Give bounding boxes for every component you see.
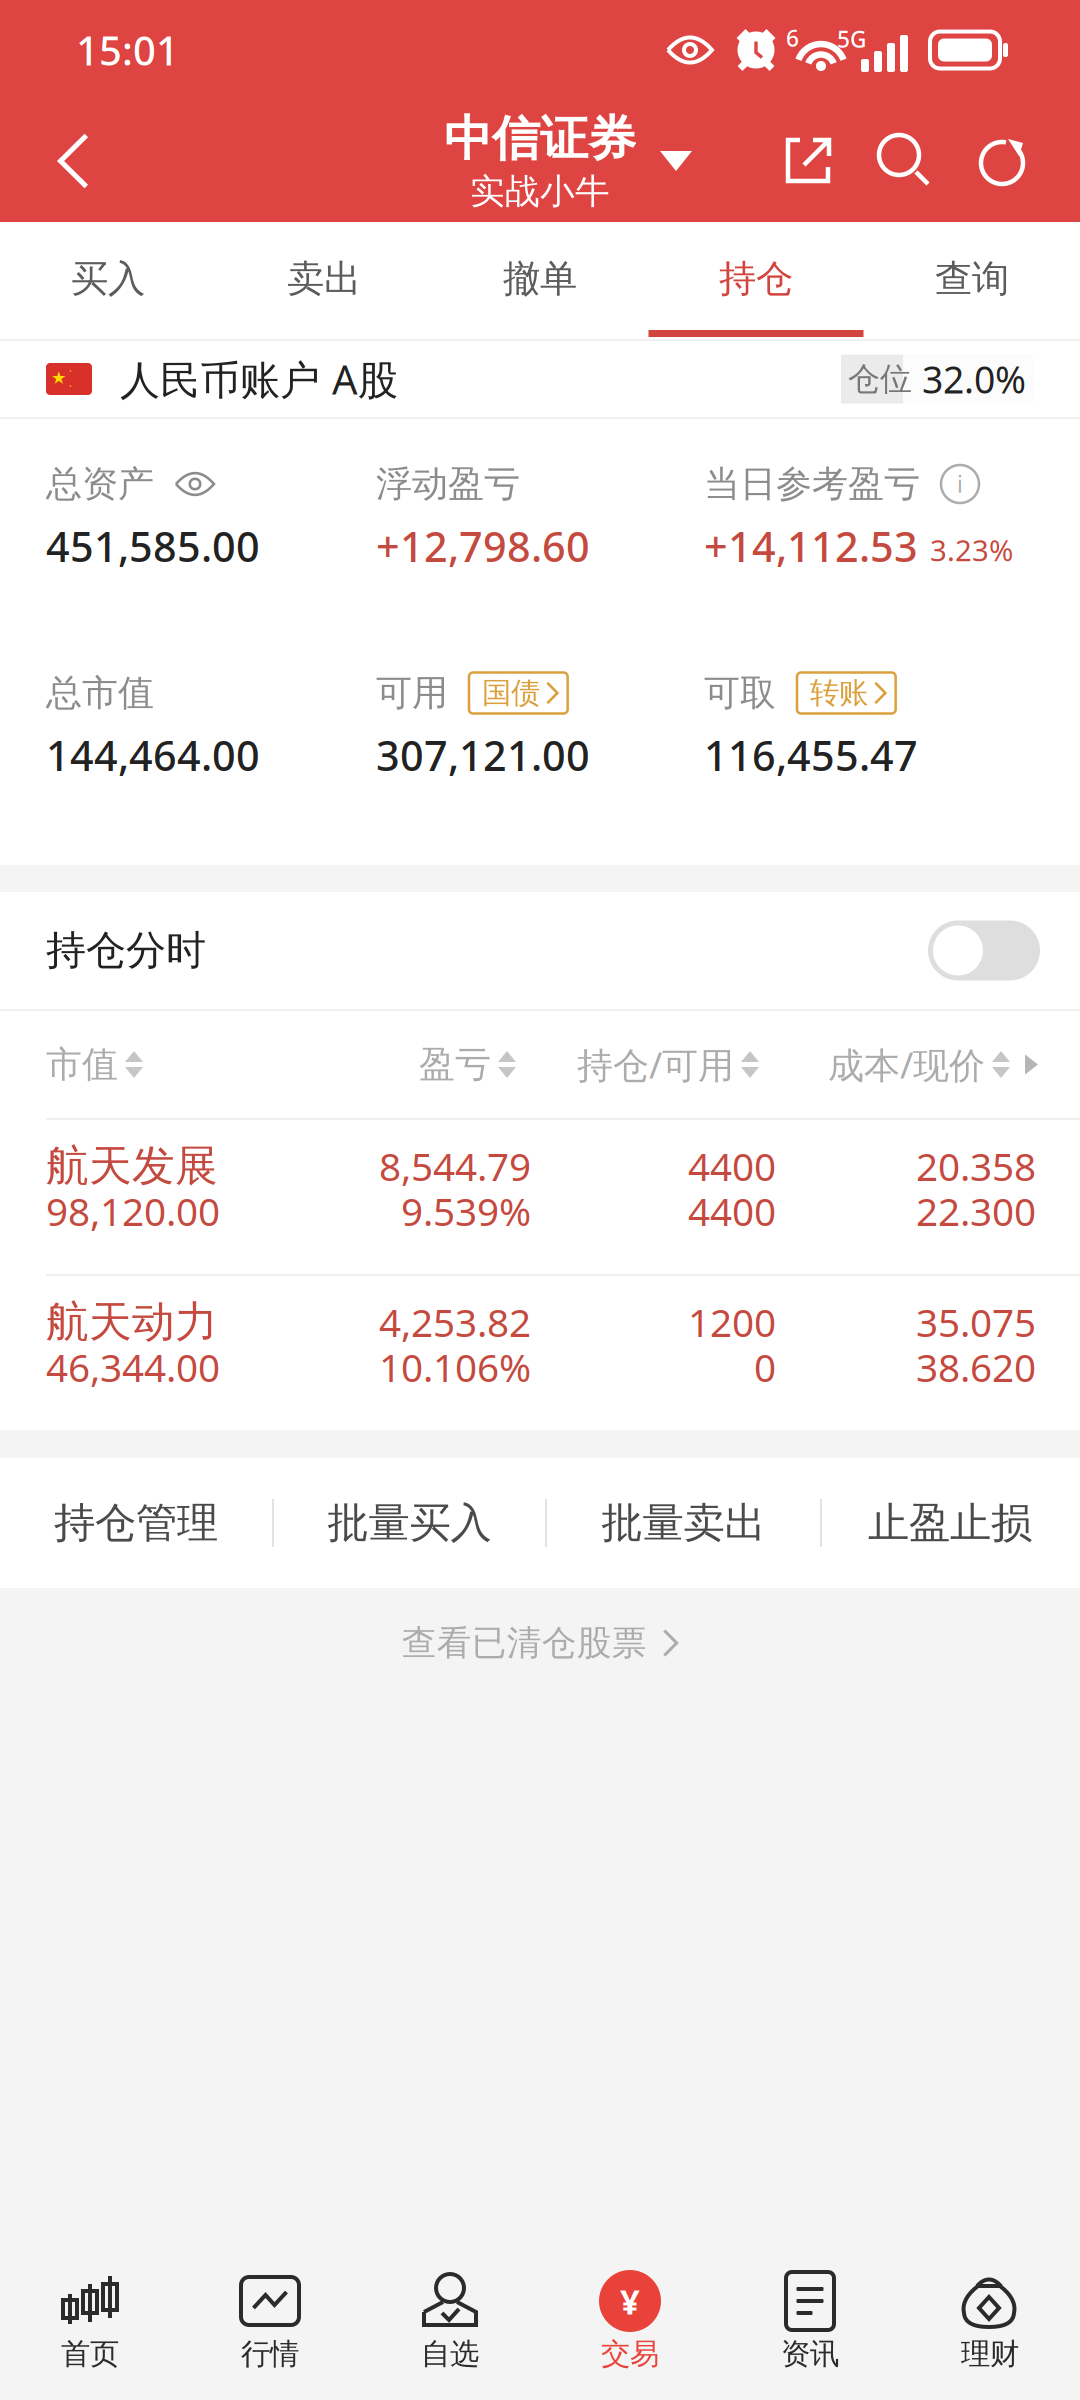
staticText: 5G — [837, 24, 866, 54]
staticText: 可用 — [376, 671, 448, 715]
button[interactable]: ★ — [0, 341, 1080, 417]
staticText: 116,455.47 — [704, 728, 918, 782]
staticText: 资讯 — [781, 2336, 839, 2372]
staticText: 盈亏 — [419, 1042, 491, 1087]
button[interactable]: 理财 — [900, 2250, 1080, 2400]
staticText: 卖出 — [287, 256, 361, 302]
button[interactable]: 查看已清仓股票 — [0, 1588, 1080, 1698]
staticText: 307,121.00 — [376, 728, 590, 782]
button[interactable]: 撤单 — [432, 222, 648, 339]
staticText: 批量卖出 — [601, 1498, 765, 1548]
staticText: 98,120.00 — [46, 1185, 220, 1237]
button[interactable]: 行情 — [180, 2250, 360, 2400]
button[interactable]: 航天动力 — [0, 1276, 1080, 1430]
staticText: +12,798.60 — [376, 519, 590, 573]
staticText: 中信证券 — [444, 109, 636, 168]
staticText: 9.539% — [401, 1185, 531, 1237]
button[interactable]: 首页 — [0, 2250, 180, 2400]
button[interactable]: Refresh — [976, 135, 1028, 187]
staticText: 20.358 — [916, 1140, 1036, 1192]
staticText: 32.0% — [922, 354, 1026, 404]
staticText: 可取 — [704, 671, 776, 715]
staticText: 持仓分时 — [46, 926, 206, 975]
button[interactable]: 持仓管理 — [0, 1458, 272, 1588]
staticText: 35.075 — [916, 1296, 1036, 1348]
staticText: 6 — [786, 23, 799, 53]
staticText: 4400 — [688, 1185, 776, 1237]
staticText: 0 — [754, 1341, 776, 1393]
staticText: 自选 — [421, 2336, 479, 2372]
staticText: 止盈止损 — [868, 1498, 1032, 1548]
staticText: 10.106% — [379, 1341, 531, 1393]
staticText: 4400 — [688, 1140, 776, 1192]
staticText: 451,585.00 — [46, 519, 260, 573]
staticText: 航天动力 — [46, 1296, 218, 1348]
staticText: ★ — [51, 368, 67, 387]
staticText: 交易 — [601, 2336, 659, 2372]
staticText: 38.620 — [916, 1341, 1036, 1393]
staticText: 当日参考盈亏 — [704, 462, 920, 506]
button[interactable]: 航天发展 — [0, 1120, 1080, 1274]
staticText: 撤单 — [503, 256, 577, 302]
staticText: i — [957, 469, 963, 499]
button[interactable]: 查询 — [864, 222, 1080, 339]
staticText: 1200 — [688, 1296, 776, 1348]
button[interactable]: ¥ — [540, 2250, 720, 2400]
staticText: · — [69, 363, 72, 377]
staticText: 国债 — [482, 675, 540, 711]
button[interactable]: 买入 — [0, 222, 216, 339]
staticText: 46,344.00 — [46, 1341, 220, 1393]
staticText: 总资产 — [46, 462, 154, 506]
button[interactable]: 持仓 — [648, 222, 864, 339]
button[interactable]: 批量卖出 — [547, 1458, 820, 1588]
button[interactable]: 卖出 — [216, 222, 432, 339]
staticText: · — [69, 378, 72, 392]
staticText: 4,253.82 — [379, 1296, 531, 1348]
staticText: 总市值 — [46, 671, 154, 715]
staticText: 首页 — [61, 2336, 119, 2372]
button[interactable]: 自选 — [360, 2250, 540, 2400]
staticText: 持仓/可用 — [577, 1041, 734, 1088]
button[interactable]: Share — [782, 135, 834, 187]
button[interactable]: Back — [0, 100, 118, 222]
staticText: 8,544.79 — [379, 1140, 531, 1192]
staticText: ¥ — [620, 2278, 640, 2324]
staticText: 持仓管理 — [54, 1498, 218, 1548]
staticText: 仓位 — [848, 359, 912, 399]
staticText: 查看已清仓股票 — [402, 1622, 647, 1664]
button[interactable]: 持仓分时 — [928, 920, 1040, 980]
staticText: 持仓 — [719, 256, 793, 302]
staticText: 查询 — [935, 256, 1009, 302]
button[interactable]: 批量买入 — [274, 1458, 545, 1588]
button[interactable]: 止盈止损 — [822, 1458, 1078, 1588]
button[interactable]: 中信证券 — [444, 100, 636, 222]
staticText: 人民币账户 A股 — [120, 352, 398, 405]
button[interactable]: Search — [879, 135, 931, 187]
staticText: 转账 — [810, 675, 868, 711]
staticText: 市值 — [46, 1042, 118, 1087]
staticText: +14,112.53 — [704, 519, 918, 573]
staticText: 成本/现价 — [828, 1041, 985, 1088]
staticText: 15:01 — [76, 23, 179, 76]
staticText: 买入 — [71, 256, 145, 302]
staticText: 行情 — [241, 2336, 299, 2372]
staticText: 浮动盈亏 — [376, 462, 520, 506]
button[interactable]: 资讯 — [720, 2250, 900, 2400]
staticText: 22.300 — [916, 1185, 1036, 1237]
staticText: 3.23% — [930, 530, 1013, 569]
staticText: 批量买入 — [327, 1498, 491, 1548]
staticText: 理财 — [961, 2336, 1019, 2372]
staticText: 实战小牛 — [470, 170, 610, 213]
staticText: 航天发展 — [46, 1140, 218, 1192]
staticText: 144,464.00 — [46, 728, 260, 782]
